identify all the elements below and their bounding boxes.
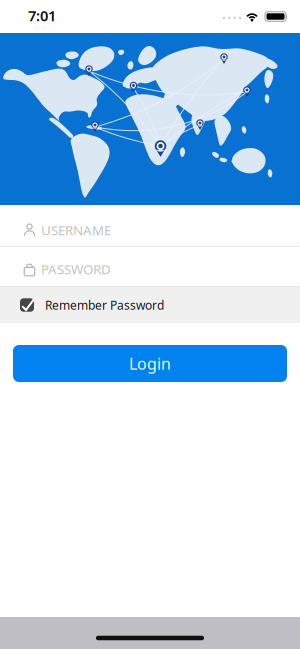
staticText: Remember Password <box>45 297 164 313</box>
staticText: USERNAME <box>41 221 111 239</box>
staticText: Login <box>129 353 171 374</box>
button[interactable]: PASSWORD <box>0 247 300 286</box>
staticText: PASSWORD <box>41 260 111 278</box>
button[interactable]: Login <box>13 345 287 382</box>
button[interactable]: USERNAME <box>0 205 300 246</box>
staticText: 7:01 <box>28 6 56 25</box>
button[interactable]: Remember Password <box>0 287 300 323</box>
